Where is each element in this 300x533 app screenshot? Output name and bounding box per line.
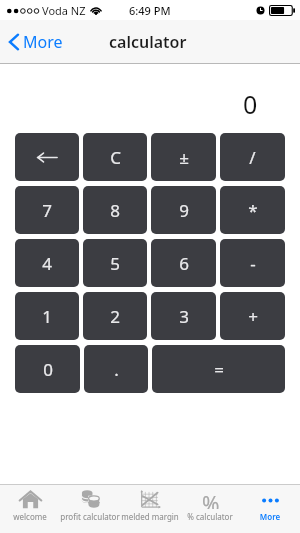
staticText: - bbox=[250, 252, 256, 275]
button[interactable]: 0 bbox=[15, 345, 80, 393]
staticText: 3 bbox=[179, 305, 189, 328]
button[interactable]: 6 bbox=[151, 239, 216, 287]
button[interactable]: C bbox=[83, 133, 147, 181]
button[interactable]: * bbox=[220, 186, 285, 234]
staticText: + bbox=[248, 305, 258, 328]
button[interactable]: melded margin bbox=[120, 485, 180, 533]
button[interactable]: 5 bbox=[83, 239, 147, 287]
staticText: 4 bbox=[42, 252, 52, 275]
staticText: 9 bbox=[179, 199, 189, 222]
button[interactable]: 7 bbox=[15, 186, 79, 234]
staticText: * bbox=[248, 199, 258, 222]
button[interactable]: 4 bbox=[15, 239, 79, 287]
staticText: 8 bbox=[110, 199, 120, 222]
staticText: % bbox=[202, 490, 220, 509]
staticText: 6:49 PM bbox=[129, 3, 171, 18]
button[interactable]: + bbox=[220, 292, 285, 340]
button[interactable]: More bbox=[240, 485, 300, 533]
staticText: 1 bbox=[42, 305, 52, 328]
staticText: 5 bbox=[110, 252, 120, 275]
button[interactable]: . bbox=[84, 345, 148, 393]
staticText: % calculator bbox=[180, 511, 240, 522]
button[interactable]: Backspace bbox=[15, 133, 79, 181]
button[interactable]: % bbox=[180, 485, 240, 533]
button[interactable]: 3 bbox=[151, 292, 216, 340]
staticText: . bbox=[114, 358, 119, 381]
button[interactable]: 9 bbox=[151, 186, 216, 234]
button[interactable]: 1 bbox=[15, 292, 79, 340]
staticText: 6 bbox=[179, 252, 189, 275]
button[interactable]: welcome bbox=[0, 485, 60, 533]
button[interactable]: More bbox=[0, 23, 73, 61]
staticText: Voda NZ bbox=[42, 3, 86, 18]
staticText: profit calculator bbox=[60, 511, 120, 522]
staticText: 2 bbox=[110, 305, 120, 328]
staticText: / bbox=[249, 146, 256, 169]
button[interactable]: profit calculator bbox=[60, 485, 120, 533]
staticText: More bbox=[240, 511, 300, 522]
staticText: C bbox=[110, 146, 121, 169]
staticText: = bbox=[214, 358, 224, 381]
staticText: More bbox=[23, 31, 63, 53]
staticText: ± bbox=[179, 146, 189, 169]
button[interactable]: = bbox=[152, 345, 285, 393]
button[interactable]: 2 bbox=[83, 292, 147, 340]
button[interactable]: ± bbox=[151, 133, 216, 181]
button[interactable]: / bbox=[220, 133, 285, 181]
staticText: 7 bbox=[42, 199, 52, 222]
button[interactable]: - bbox=[220, 239, 285, 287]
staticText: 0 bbox=[243, 87, 258, 121]
staticText: calculator bbox=[109, 31, 187, 53]
staticText: melded margin bbox=[120, 511, 180, 522]
button[interactable]: 8 bbox=[83, 186, 147, 234]
staticText: 0 bbox=[43, 358, 53, 381]
staticText: welcome bbox=[0, 511, 60, 522]
